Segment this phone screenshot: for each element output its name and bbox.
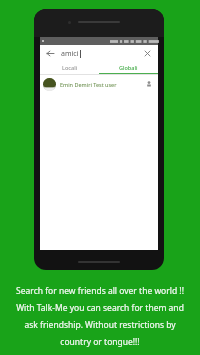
staticText: Globali (119, 64, 138, 71)
staticText: Emin Demiri Test user (60, 81, 143, 88)
button[interactable]: Emin Demiri Test user (40, 75, 158, 93)
staticText: country or tongue!!! (60, 336, 140, 348)
button[interactable]: Globali (99, 62, 158, 73)
button[interactable]: Clear search (141, 47, 154, 60)
staticText: amici (61, 49, 79, 59)
button[interactable]: Locali (40, 62, 99, 73)
staticText: Search for new friends all over the worl… (16, 285, 184, 297)
staticText: With Talk-Me you can search for them and (16, 302, 184, 314)
button[interactable]: Add friend (143, 78, 155, 90)
button[interactable]: Back (44, 47, 57, 60)
staticText: ask friendship. Without restrictions by (24, 319, 176, 331)
staticText: Locali (62, 64, 78, 71)
